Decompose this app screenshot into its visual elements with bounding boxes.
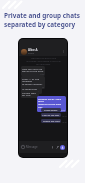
staticText: We will wait for you. <box>22 91 38 97</box>
staticText: 10:42 <box>38 109 65 111</box>
button[interactable]: Where are you? <box>41 119 61 123</box>
button[interactable]: We will wait for you. <box>21 90 39 98</box>
button[interactable]: At what time will you come? <box>21 86 42 94</box>
staticText: Message <box>26 145 51 149</box>
button[interactable]: More options <box>62 50 65 53</box>
staticText: separated by category <box>4 20 76 29</box>
button[interactable]: Attach file <box>56 146 59 149</box>
button[interactable]: Voice message <box>51 146 54 149</box>
staticText: 10:45 <box>62 121 67 123</box>
staticText: 10:43 <box>62 110 67 112</box>
button[interactable]: Alice A <box>19 48 67 55</box>
button[interactable]: Send <box>60 145 65 150</box>
staticText: Where are you? <box>43 120 60 123</box>
staticText: Alice A <box>28 48 38 52</box>
staticText: Perfect! I'm in. April and I need to hit… <box>38 97 65 109</box>
button[interactable]: Emoji <box>21 145 25 149</box>
staticText: Private and group chats <box>4 11 81 20</box>
button[interactable]: Then — to The Meadow of green comedy. <box>21 76 45 89</box>
staticText: Messages are end-to-end encrypted. Only … <box>26 57 61 66</box>
staticText: 10:36 <box>22 86 44 88</box>
button[interactable]: How are you? We will go to the park. <box>21 66 45 76</box>
staticText: I am on the way <box>42 114 60 117</box>
button[interactable]: I am on the way <box>41 113 61 117</box>
staticText: 10:35 <box>22 73 44 75</box>
staticText: 10:44 <box>62 115 67 117</box>
staticText: How are you? We will go to the park. <box>22 67 44 73</box>
staticText: online <box>28 52 34 55</box>
staticText: At what time will you come? <box>22 87 41 93</box>
staticText: It was forest <box>44 109 58 112</box>
button[interactable]: It was forest <box>41 108 61 112</box>
staticText: Then — to The Meadow of green comedy. <box>22 77 44 86</box>
button[interactable]: Perfect! I'm in. April and I need to hit… <box>37 96 66 112</box>
